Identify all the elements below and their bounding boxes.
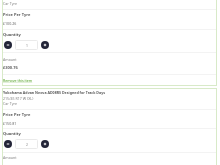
button[interactable]: Remove this item (3, 75, 216, 85)
staticText: 215/45 R17 W (XL) (3, 96, 34, 101)
staticText: Quantity (3, 131, 21, 136)
staticText: Price Per Tyre (3, 112, 31, 117)
staticText: Price Per Tyre (3, 12, 31, 17)
staticText: Quantity (3, 32, 21, 37)
staticText: £100.26 (3, 21, 17, 26)
staticText: 2 (26, 142, 28, 147)
staticText: Remove this item (3, 78, 33, 83)
staticText: £150.81 (3, 121, 17, 126)
staticText: £300.76 (3, 65, 18, 70)
staticText: Amount (3, 155, 17, 160)
staticText: Amount (3, 57, 17, 62)
button[interactable]: Increase quantity (41, 41, 49, 49)
staticText: Car Tyre (3, 101, 17, 106)
button[interactable]: Decrease quantity (4, 41, 12, 49)
button[interactable]: Yokohama Advan Neova AD08RS Designed for… (3, 90, 106, 95)
button[interactable]: Decrease quantity (4, 140, 12, 148)
staticText: Car Tyre (3, 1, 17, 6)
staticText: 1 (26, 43, 28, 48)
button[interactable]: Increase quantity (41, 140, 49, 148)
